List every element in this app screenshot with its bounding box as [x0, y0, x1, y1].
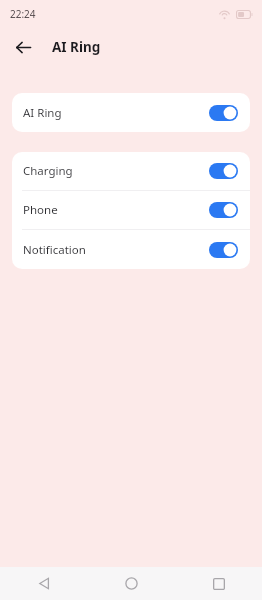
button[interactable]: Phone [12, 191, 250, 229]
button[interactable]: AI Ring [12, 93, 250, 132]
staticText: Notification [23, 242, 86, 258]
button[interactable]: Toggle on [209, 163, 238, 179]
button[interactable]: Home [88, 567, 175, 600]
button[interactable]: Recent apps [175, 567, 262, 600]
staticText: AI Ring [52, 38, 101, 56]
button[interactable]: Back [0, 567, 88, 600]
staticText: Phone [23, 202, 58, 218]
button[interactable]: Back [9, 33, 37, 61]
staticText: Charging [23, 163, 73, 179]
button[interactable]: Notification [12, 230, 250, 269]
button[interactable]: Charging [12, 152, 250, 190]
button[interactable]: Toggle on [209, 105, 238, 121]
button[interactable]: Toggle on [209, 202, 238, 218]
staticText: AI Ring [23, 105, 62, 121]
staticText: 22:24 [10, 7, 36, 21]
button[interactable]: Toggle on [209, 242, 238, 258]
